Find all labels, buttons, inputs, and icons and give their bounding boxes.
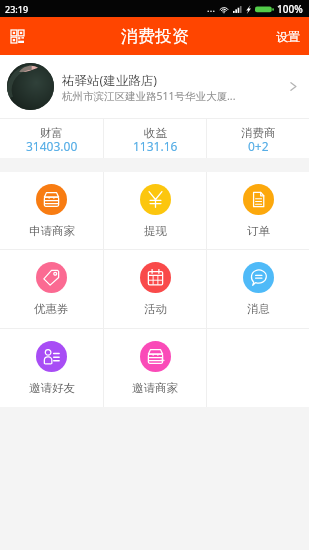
- staticText: 杭州市滨江区建业路511号华业大厦...: [62, 89, 236, 103]
- staticText: 100%: [277, 2, 303, 16]
- staticText: 消费投资: [121, 26, 189, 47]
- button[interactable]: 设置: [267, 17, 309, 55]
- staticText: 邀请好友: [29, 381, 75, 395]
- button[interactable]: 活动: [104, 250, 206, 328]
- button[interactable]: 订单: [207, 172, 309, 249]
- staticText: 0+2: [248, 138, 269, 154]
- staticText: 邀请商家: [132, 381, 178, 395]
- button[interactable]: 邀请商家: [104, 329, 206, 407]
- staticText: 祐驿站(建业路店): [62, 72, 158, 89]
- button[interactable]: 财富: [0, 119, 103, 158]
- button[interactable]: 扫一扫: [0, 17, 35, 55]
- staticText: 消费商: [241, 126, 276, 140]
- button[interactable]: 收益: [104, 119, 206, 158]
- staticText: 申请商家: [29, 224, 75, 238]
- staticText: 23:19: [5, 3, 29, 15]
- button[interactable]: 邀请好友: [0, 329, 103, 407]
- staticText: 订单: [247, 224, 270, 238]
- staticText: 1131.16: [133, 138, 178, 154]
- staticText: 设置: [276, 29, 300, 44]
- button[interactable]: 消息: [207, 250, 309, 328]
- button[interactable]: 祐驿站(建业路店): [0, 55, 309, 118]
- staticText: 消息: [247, 302, 270, 316]
- button[interactable]: 申请商家: [0, 172, 103, 249]
- staticText: 优惠券: [34, 302, 69, 316]
- staticText: 活动: [144, 302, 167, 316]
- button[interactable]: 优惠券: [0, 250, 103, 328]
- staticText: 财富: [40, 126, 63, 140]
- button[interactable]: 提现: [104, 172, 206, 249]
- staticText: 提现: [144, 224, 167, 238]
- staticText: 31403.00: [26, 138, 78, 154]
- button[interactable]: 消费商: [207, 119, 309, 158]
- staticText: 收益: [144, 126, 167, 140]
